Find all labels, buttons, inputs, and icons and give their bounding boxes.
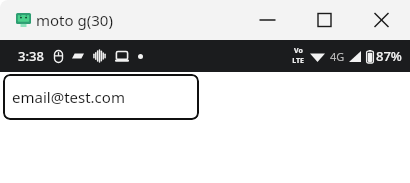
staticText: LTE	[292, 56, 304, 66]
staticText: 3:38	[18, 47, 44, 65]
staticText: 4G	[330, 49, 345, 64]
staticText: email@test.com	[12, 87, 125, 107]
staticText: Vo	[294, 46, 303, 56]
staticText: moto g(30)	[36, 10, 113, 30]
button[interactable]: Close	[353, 0, 410, 40]
staticText: 87%	[376, 47, 402, 65]
button[interactable]: Minimize	[239, 0, 296, 40]
button[interactable]: email@test.com	[3, 74, 199, 120]
button[interactable]: Maximize	[296, 0, 353, 40]
